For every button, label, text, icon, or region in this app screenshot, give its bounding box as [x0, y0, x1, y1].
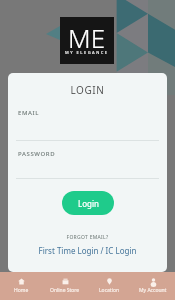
button[interactable]: FORGOT EMAIL?: [8, 234, 167, 241]
other: Online Store: [62, 278, 69, 285]
staticText: EMAIL: [18, 109, 40, 117]
other: Home: [18, 278, 25, 285]
staticText: Online Store: [50, 287, 80, 294]
button[interactable]: Login: [62, 191, 114, 215]
button[interactable]: Location: [87, 272, 131, 296]
staticText: My Account: [139, 287, 167, 294]
staticText: Location: [99, 287, 120, 294]
staticText: ME: [68, 20, 106, 55]
button[interactable]: Online Store: [43, 272, 87, 296]
button[interactable]: Home: [0, 272, 43, 296]
staticText: LOGIN: [8, 83, 167, 97]
other: Location: [106, 278, 113, 285]
staticText: MY ELEGANCE: [65, 50, 109, 55]
staticText: Login: [78, 198, 99, 209]
other: My Account: [150, 278, 157, 285]
button[interactable]: First Time Login / IC Login: [8, 245, 167, 256]
staticText: Home: [14, 287, 29, 294]
staticText: PASSWORD: [18, 150, 56, 158]
button[interactable]: My Account: [131, 272, 175, 296]
